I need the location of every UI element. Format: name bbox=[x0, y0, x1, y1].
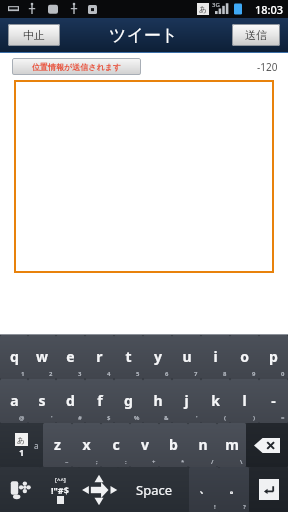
staticText: i bbox=[213, 347, 218, 366]
button[interactable]: b bbox=[159, 423, 188, 467]
staticText: u bbox=[182, 347, 192, 366]
staticText: 1 bbox=[21, 370, 25, 378]
staticText: g bbox=[124, 391, 133, 410]
staticText: w bbox=[36, 347, 48, 366]
staticText: 0 bbox=[281, 370, 285, 378]
button[interactable]: v bbox=[130, 423, 159, 467]
button[interactable] bbox=[14, 80, 274, 273]
button[interactable]: z bbox=[43, 423, 72, 467]
staticText: m bbox=[225, 435, 239, 454]
button[interactable]: y bbox=[143, 335, 172, 379]
button[interactable]: g bbox=[114, 379, 143, 423]
button[interactable]: - bbox=[259, 379, 288, 423]
button[interactable]: e bbox=[56, 335, 85, 379]
button[interactable]: Switch keyboard bbox=[0, 467, 40, 512]
staticText: y bbox=[154, 347, 162, 366]
button[interactable]: t bbox=[114, 335, 143, 379]
staticText: n bbox=[198, 435, 208, 454]
button[interactable]: r bbox=[85, 335, 114, 379]
staticText: e bbox=[66, 347, 75, 366]
staticText: 3G bbox=[212, 1, 220, 9]
button[interactable]: j bbox=[172, 379, 201, 423]
staticText: + bbox=[152, 458, 156, 466]
staticText: ; bbox=[96, 458, 98, 466]
staticText: 18:03 bbox=[255, 2, 284, 17]
staticText: j bbox=[184, 391, 189, 410]
button[interactable]: s bbox=[28, 379, 56, 423]
button[interactable]: i bbox=[201, 335, 230, 379]
staticText: & bbox=[164, 414, 169, 422]
staticText: % bbox=[134, 414, 140, 422]
staticText: \ bbox=[240, 458, 243, 466]
button[interactable]: k bbox=[201, 379, 230, 423]
staticText: ツイート bbox=[109, 25, 179, 46]
button[interactable]: n bbox=[188, 423, 217, 467]
staticText: ? bbox=[243, 503, 246, 511]
button[interactable]: Symbols bbox=[40, 467, 79, 512]
staticText: a bbox=[34, 440, 39, 451]
button[interactable]: Input mode bbox=[0, 423, 43, 467]
staticText: d bbox=[66, 391, 75, 410]
staticText: @ bbox=[19, 414, 25, 422]
button[interactable]: u bbox=[172, 335, 201, 379]
staticText: c bbox=[112, 435, 120, 454]
button[interactable]: Enter bbox=[249, 467, 288, 512]
button[interactable]: 。 bbox=[219, 467, 249, 512]
staticText: 8 bbox=[223, 370, 227, 378]
staticText: 3 bbox=[78, 370, 82, 378]
button[interactable]: c bbox=[101, 423, 130, 467]
staticText: - bbox=[271, 391, 276, 410]
staticText: t bbox=[125, 347, 132, 366]
staticText: 9 bbox=[252, 370, 256, 378]
staticText: 1 bbox=[19, 446, 25, 458]
button[interactable]: f bbox=[85, 379, 114, 423]
staticText: 2 bbox=[49, 370, 53, 378]
staticText: l bbox=[242, 391, 247, 410]
button[interactable]: Backspace bbox=[246, 423, 288, 467]
button[interactable]: 、 bbox=[189, 467, 219, 512]
button[interactable]: w bbox=[28, 335, 56, 379]
button[interactable]: a bbox=[0, 379, 28, 423]
staticText: : bbox=[125, 458, 127, 466]
staticText: k bbox=[211, 391, 220, 410]
staticText: 7 bbox=[194, 370, 198, 378]
staticText: ~ bbox=[65, 458, 69, 466]
button[interactable]: Space bbox=[118, 467, 189, 512]
staticText: $ bbox=[107, 414, 111, 422]
button[interactable]: x bbox=[72, 423, 101, 467]
staticText: 位置情報が送信されます bbox=[32, 62, 121, 72]
staticText: ! bbox=[214, 503, 216, 511]
staticText: s bbox=[38, 391, 46, 410]
button[interactable]: d bbox=[56, 379, 85, 423]
staticText: b bbox=[169, 435, 178, 454]
staticText: ( bbox=[224, 414, 227, 422]
staticText: -120 bbox=[257, 60, 278, 74]
staticText: 4 bbox=[107, 370, 111, 378]
staticText: o bbox=[240, 347, 249, 366]
staticText: q bbox=[10, 347, 19, 366]
button[interactable]: o bbox=[230, 335, 259, 379]
staticText: v bbox=[141, 435, 149, 454]
button[interactable]: q bbox=[0, 335, 28, 379]
button[interactable]: m bbox=[217, 423, 246, 467]
button[interactable]: 中止 bbox=[8, 24, 60, 46]
staticText: 、 bbox=[199, 482, 210, 496]
staticText: p bbox=[269, 347, 278, 366]
staticText: z bbox=[54, 435, 61, 454]
staticText: * bbox=[181, 458, 185, 466]
staticText: # bbox=[78, 414, 82, 422]
staticText: あ bbox=[17, 435, 26, 445]
staticText: 5 bbox=[136, 370, 140, 378]
button[interactable]: 送信 bbox=[232, 24, 280, 46]
button[interactable]: l bbox=[230, 379, 259, 423]
staticText: ' bbox=[51, 414, 53, 422]
staticText: = bbox=[281, 414, 285, 422]
staticText: ) bbox=[253, 414, 256, 422]
button[interactable]: 位置情報が送信されます bbox=[12, 58, 141, 75]
staticText: / bbox=[211, 458, 214, 466]
button[interactable]: p bbox=[259, 335, 288, 379]
staticText: あ bbox=[199, 4, 208, 14]
button[interactable]: Cursor keys bbox=[79, 467, 118, 512]
staticText: r bbox=[96, 347, 103, 366]
button[interactable]: h bbox=[143, 379, 172, 423]
